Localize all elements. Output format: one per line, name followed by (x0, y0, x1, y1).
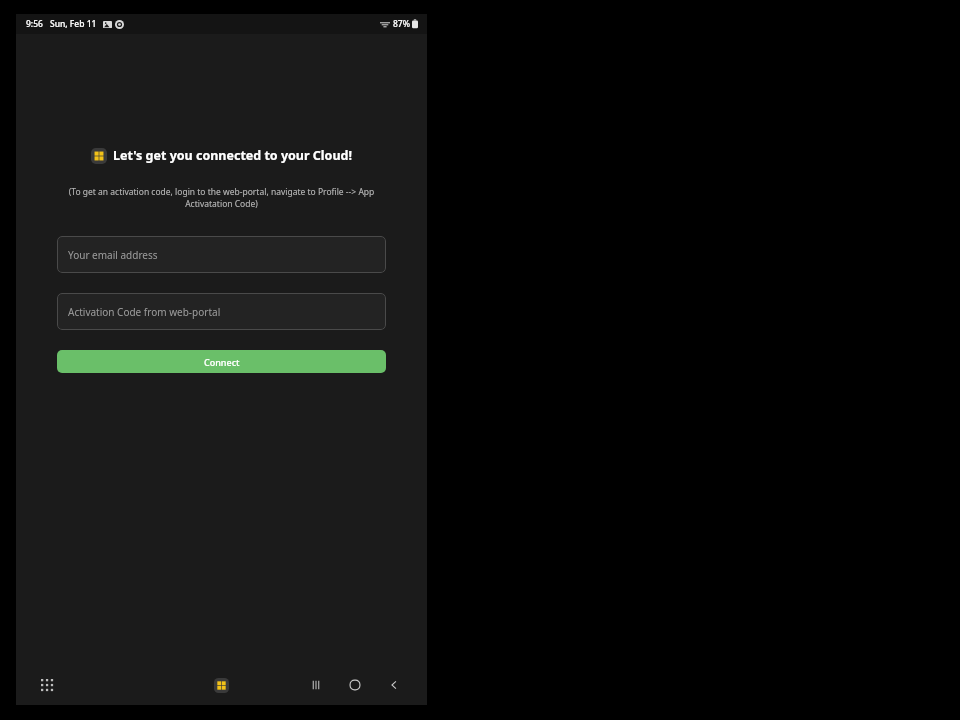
button[interactable]: Activation Code from web-portal (57, 293, 386, 330)
staticText: Connect (204, 356, 240, 368)
staticText: Your email address (68, 248, 158, 262)
button[interactable]: All apps (34, 672, 60, 698)
button[interactable]: Recent apps (303, 672, 329, 698)
staticText: (To get an activation code, login to the… (57, 186, 386, 210)
button[interactable]: Your email address (57, 236, 386, 273)
staticText: Activation Code from web-portal (68, 305, 221, 319)
button[interactable]: Cloud app (208, 672, 234, 698)
button[interactable]: Connect (57, 350, 386, 373)
button[interactable]: Back (381, 672, 407, 698)
staticText: 87% (393, 18, 410, 30)
button[interactable]: Home (342, 672, 368, 698)
staticText: Sun, Feb 11 (50, 18, 97, 30)
staticText: 9:56 (26, 18, 43, 30)
staticText: Let's get you connected to your Cloud! (113, 147, 352, 164)
